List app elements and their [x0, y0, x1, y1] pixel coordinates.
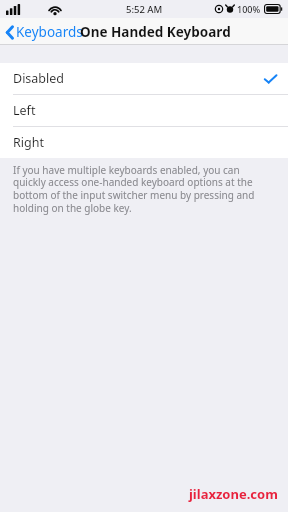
button[interactable]: Disabled [0, 63, 288, 94]
staticText: Left [13, 102, 36, 119]
staticText: 100% [237, 3, 261, 15]
staticText: Disabled [13, 70, 65, 87]
button[interactable]: Left [0, 95, 288, 126]
staticText: 5:52 AM [126, 3, 163, 16]
staticText: Right [13, 134, 44, 151]
button[interactable]: Keyboards [0, 20, 89, 44]
button[interactable]: Right [0, 127, 288, 158]
staticText: jilaxzone.com [189, 485, 278, 503]
staticText: If you have multiple keyboards enabled, … [13, 163, 274, 215]
staticText: Keyboards [16, 23, 83, 41]
staticText: One Handed Keyboard [80, 23, 231, 41]
